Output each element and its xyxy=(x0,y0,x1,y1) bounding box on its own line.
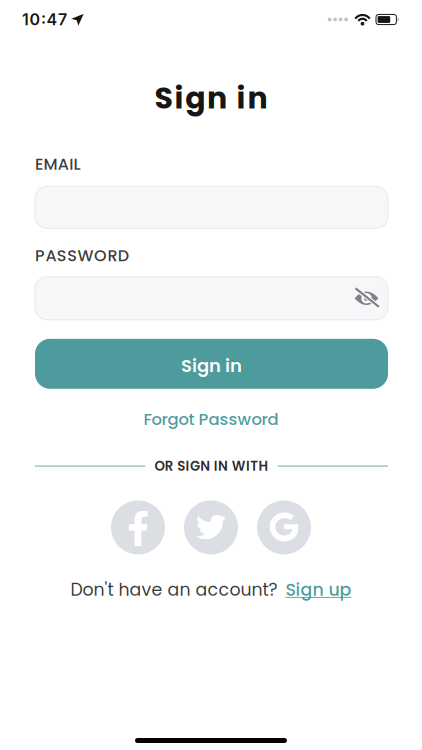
staticText: Sign in xyxy=(155,77,267,119)
staticText: Sign up xyxy=(285,577,351,602)
staticText: OR SIGN IN WITH xyxy=(154,457,269,475)
button[interactable]: Sign in xyxy=(35,339,388,389)
staticText: EMAIL xyxy=(35,153,81,175)
button[interactable]: Sign in with Facebook xyxy=(111,500,165,554)
staticText: 10:47 xyxy=(22,10,67,29)
button[interactable]: Sign in with Twitter xyxy=(184,500,238,554)
staticText: Sign in xyxy=(181,353,242,378)
textField[interactable] xyxy=(49,283,374,313)
button[interactable]: Sign in with Google xyxy=(257,500,311,554)
button[interactable]: Show password xyxy=(354,288,388,308)
button[interactable]: Sign up xyxy=(285,577,351,602)
button[interactable]: Forgot Password xyxy=(143,408,278,431)
staticText: PASSWORD xyxy=(35,244,129,267)
staticText: Forgot Password xyxy=(143,408,278,431)
staticText: Don't have an account? xyxy=(70,577,277,602)
